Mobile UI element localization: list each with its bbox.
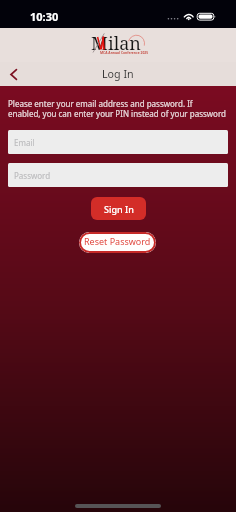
button[interactable]: Back [0, 62, 26, 86]
staticText: Reset Password [84, 235, 151, 247]
staticText: Milan [91, 31, 141, 56]
button[interactable]: Sign In [91, 197, 146, 220]
staticText: Log In [102, 67, 134, 82]
button[interactable]: Email [8, 130, 228, 154]
staticText: 10:30 [30, 9, 59, 24]
staticText: Sign In [104, 203, 134, 215]
staticText: MCA Annual Conference 2025 [100, 50, 149, 54]
button[interactable]: Password [8, 163, 228, 187]
staticText: Email [14, 137, 35, 148]
staticText: Password [14, 170, 51, 181]
button[interactable]: Reset Password [79, 232, 156, 253]
staticText: Please enter your email address and pass… [8, 98, 226, 120]
